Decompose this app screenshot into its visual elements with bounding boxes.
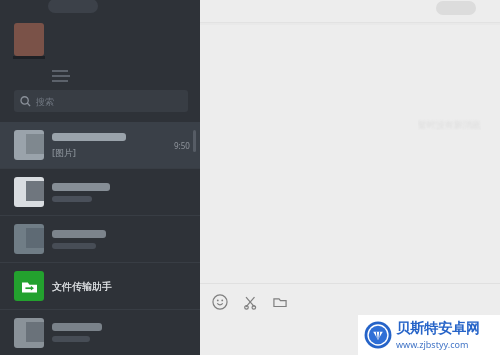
staticText: 搜索: [36, 96, 54, 107]
button[interactable]: Files: [272, 294, 288, 310]
button[interactable]: 搜索: [14, 90, 188, 112]
button[interactable]: Menu: [52, 70, 70, 82]
button[interactable]: [0, 310, 200, 355]
button[interactable]: 文件传输助手: [0, 263, 200, 309]
button[interactable]: Emoji: [212, 294, 228, 310]
button[interactable]: Screenshot: [242, 294, 258, 310]
staticText: [图片]: [52, 146, 76, 158]
staticText: 9:50: [174, 140, 190, 151]
staticText: 贝斯特安卓网: [396, 320, 480, 338]
button[interactable]: Profile: [14, 23, 44, 56]
button[interactable]: [0, 169, 200, 215]
staticText: www.zjbstyy.com: [396, 338, 469, 350]
staticText: 文件传输助手: [52, 280, 112, 293]
button[interactable]: [图片]: [0, 122, 200, 168]
button[interactable]: [0, 216, 200, 262]
